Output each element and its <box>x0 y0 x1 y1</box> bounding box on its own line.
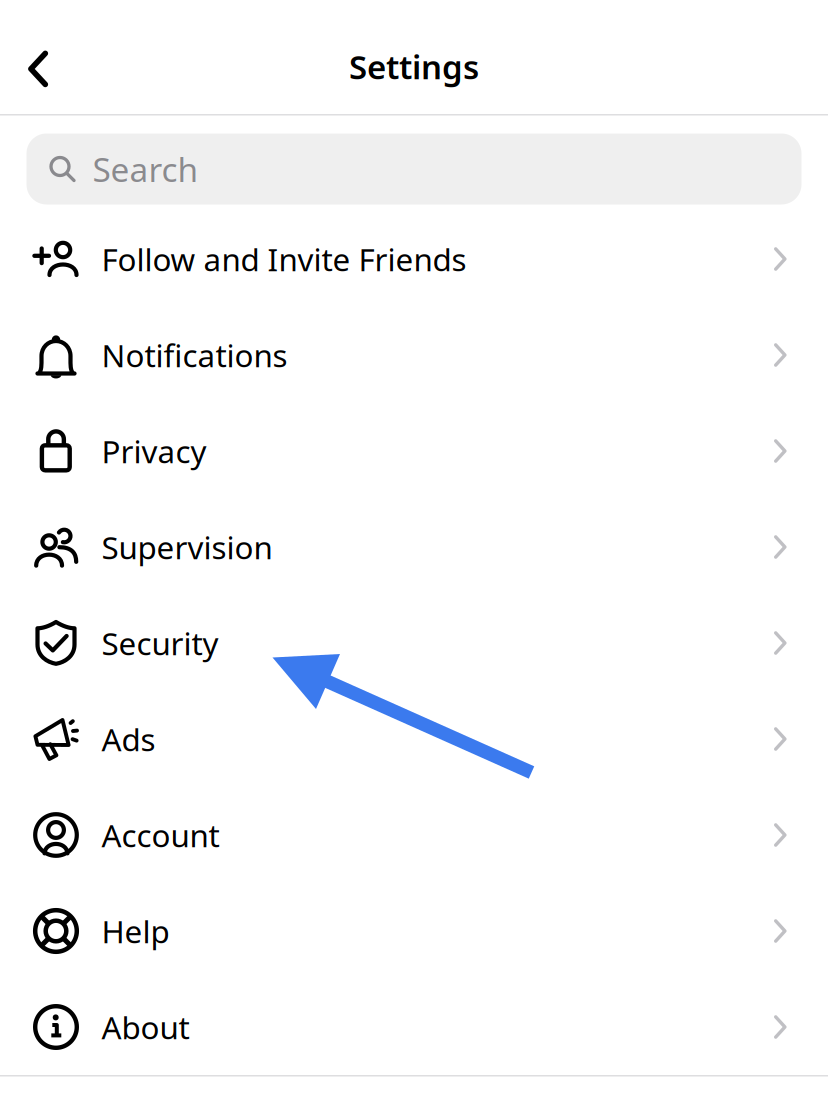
button[interactable]: About <box>0 979 828 1075</box>
button[interactable]: Back <box>14 43 64 95</box>
button[interactable]: Security <box>0 595 828 691</box>
button[interactable]: Ads <box>0 691 828 787</box>
staticText: Account <box>101 814 219 856</box>
staticText: Notifications <box>101 334 287 376</box>
staticText: Ads <box>101 718 155 760</box>
button[interactable]: Notifications <box>0 307 828 403</box>
staticText: Search <box>92 146 198 192</box>
button[interactable]: Help <box>0 883 828 979</box>
staticText: Help <box>101 910 169 952</box>
staticText: Security <box>101 622 218 664</box>
button[interactable]: Search <box>26 133 801 204</box>
staticText: Supervision <box>101 526 272 568</box>
staticText: About <box>101 1006 189 1048</box>
button[interactable]: Privacy <box>0 403 828 499</box>
button[interactable]: Account <box>0 787 828 883</box>
button[interactable]: Follow and Invite Friends <box>0 211 828 307</box>
staticText: Privacy <box>101 430 206 472</box>
button[interactable]: Supervision <box>0 499 828 595</box>
staticText: Follow and Invite Friends <box>101 238 466 280</box>
staticText: Settings <box>349 44 479 89</box>
